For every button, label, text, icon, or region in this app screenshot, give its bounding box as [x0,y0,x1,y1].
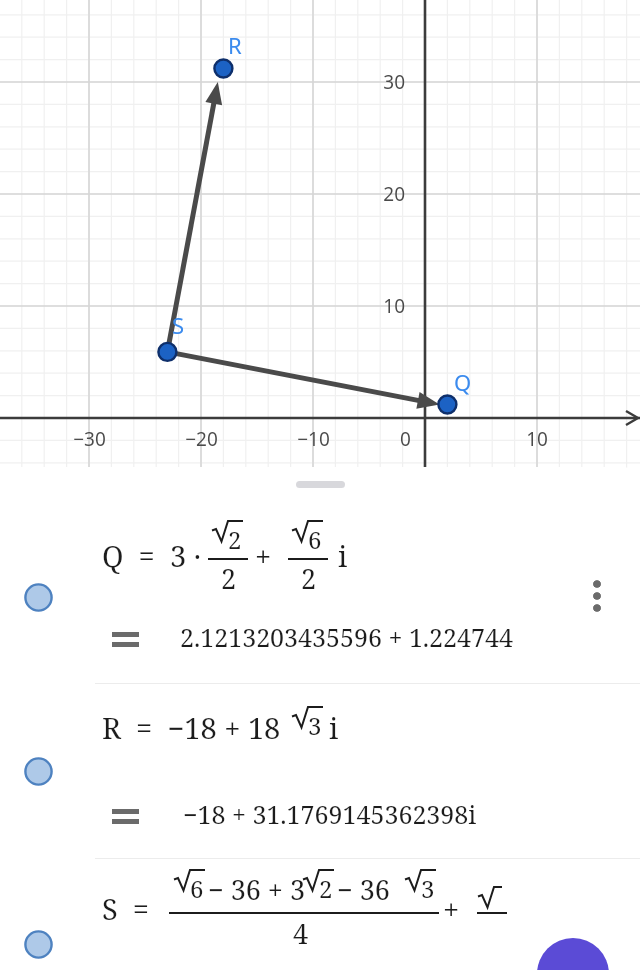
button[interactable]: Options for Q [578,575,616,623]
staticText: 10 [526,426,548,452]
button[interactable]: Toggle visibility [24,757,53,786]
staticText: R = −18 + 18 [102,708,281,747]
staticText: 6 [190,872,204,905]
staticText: + [443,889,460,928]
staticText: 2 [228,523,242,556]
button[interactable]: Add expression [537,938,609,970]
staticText: S [172,310,185,340]
staticText: −10 [297,426,330,452]
button[interactable]: R = −18 + 18 [95,700,565,756]
staticText: R [228,30,242,60]
staticText: 10 [383,293,405,319]
staticText: 3 [308,709,322,742]
staticText: −30 [73,426,106,452]
staticText: 30 [383,69,405,95]
staticText: − 36 + 3 [208,871,306,908]
staticText: 0 [400,426,411,452]
button[interactable]: S = [95,862,565,957]
staticText: −18 + 31.1769145362398i [183,797,477,831]
button[interactable]: Toggle visibility [24,930,53,959]
staticText: i [338,536,348,575]
staticText: Q = 3 · [102,536,201,575]
staticText: − 36 [337,871,390,908]
button[interactable]: Toggle visibility [24,583,53,612]
button[interactable]: Options for R [578,575,616,623]
staticText: 6 [308,523,322,556]
staticText: 3 [421,872,435,905]
staticText: Q [454,367,472,397]
staticText: 2.1213203435596 + 1.224744 [180,620,513,654]
button[interactable]: Q = 3 · [95,510,565,590]
staticText: i [329,708,339,747]
staticText: −20 [185,426,218,452]
staticText: 2 [319,872,333,905]
staticText: 2 [221,560,237,597]
button[interactable] [296,481,345,488]
button[interactable]: Options for S [578,575,616,623]
staticText: + [255,536,272,575]
staticText: 4 [293,915,309,952]
staticText: S = [102,889,150,928]
staticText: 2 [301,560,317,597]
staticText: 20 [383,181,405,207]
